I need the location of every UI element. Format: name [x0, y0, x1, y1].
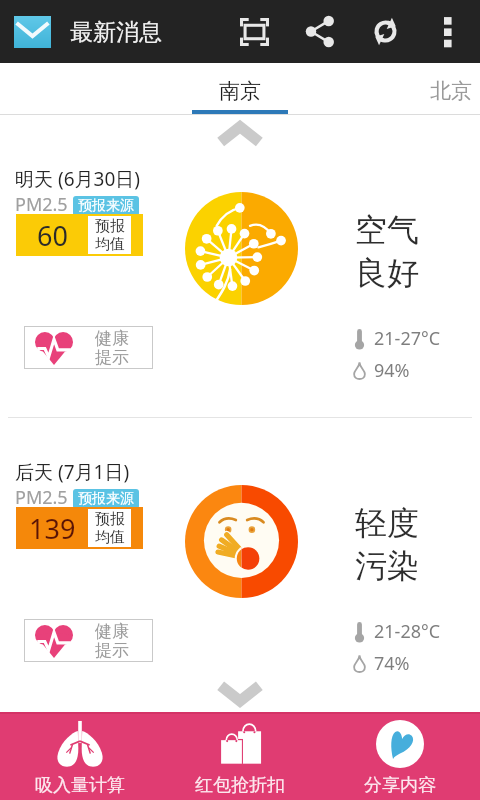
staticText: 21-28°C — [374, 619, 441, 644]
staticText: 北京 — [430, 78, 472, 104]
button[interactable]: Next day — [208, 680, 272, 706]
staticText: 健康 提示 — [95, 621, 129, 661]
staticText: 139 — [29, 510, 76, 547]
button[interactable]: 健康 提示 — [24, 326, 153, 369]
staticText: 轻度 污染 — [355, 503, 419, 587]
button[interactable]: 吸入量计算 — [0, 712, 160, 800]
staticText: 红包抢折扣 — [195, 774, 285, 797]
staticText: 60 — [37, 217, 68, 254]
staticText: 分享内容 — [364, 774, 436, 797]
button[interactable]: 南京 — [168, 63, 312, 115]
staticText: 74% — [374, 651, 410, 676]
staticText: 预报 均值 — [95, 217, 125, 253]
staticText: 21-27°C — [374, 326, 441, 351]
staticText: 南京 — [219, 78, 261, 104]
staticText: 空气 良好 — [355, 210, 419, 294]
staticText: PM2.5 — [15, 192, 68, 217]
button[interactable]: 分享内容 — [320, 712, 480, 800]
button[interactable]: Previous day — [208, 121, 272, 147]
button[interactable]: Share — [295, 0, 345, 63]
staticText: 明天 (6月30日) — [15, 166, 140, 192]
staticText: 健康 提示 — [95, 328, 129, 368]
button[interactable]: Refresh — [360, 0, 410, 63]
staticText: 最新消息 — [70, 18, 162, 47]
staticText: 吸入量计算 — [35, 774, 125, 797]
staticText: 预报 均值 — [95, 510, 125, 546]
button[interactable]: Screenshot — [229, 0, 279, 63]
button[interactable]: 红包抢折扣 — [160, 712, 320, 800]
button[interactable]: 健康 提示 — [24, 619, 153, 662]
staticText: 94% — [374, 358, 410, 383]
button[interactable]: More options — [424, 0, 472, 63]
staticText: 预报来源 — [78, 490, 134, 508]
button[interactable]: 北京 — [394, 63, 480, 115]
staticText: 后天 (7月1日) — [15, 459, 130, 485]
staticText: 预报来源 — [78, 197, 134, 215]
button[interactable]: Messages — [6, 0, 58, 63]
staticText: PM2.5 — [15, 485, 68, 510]
